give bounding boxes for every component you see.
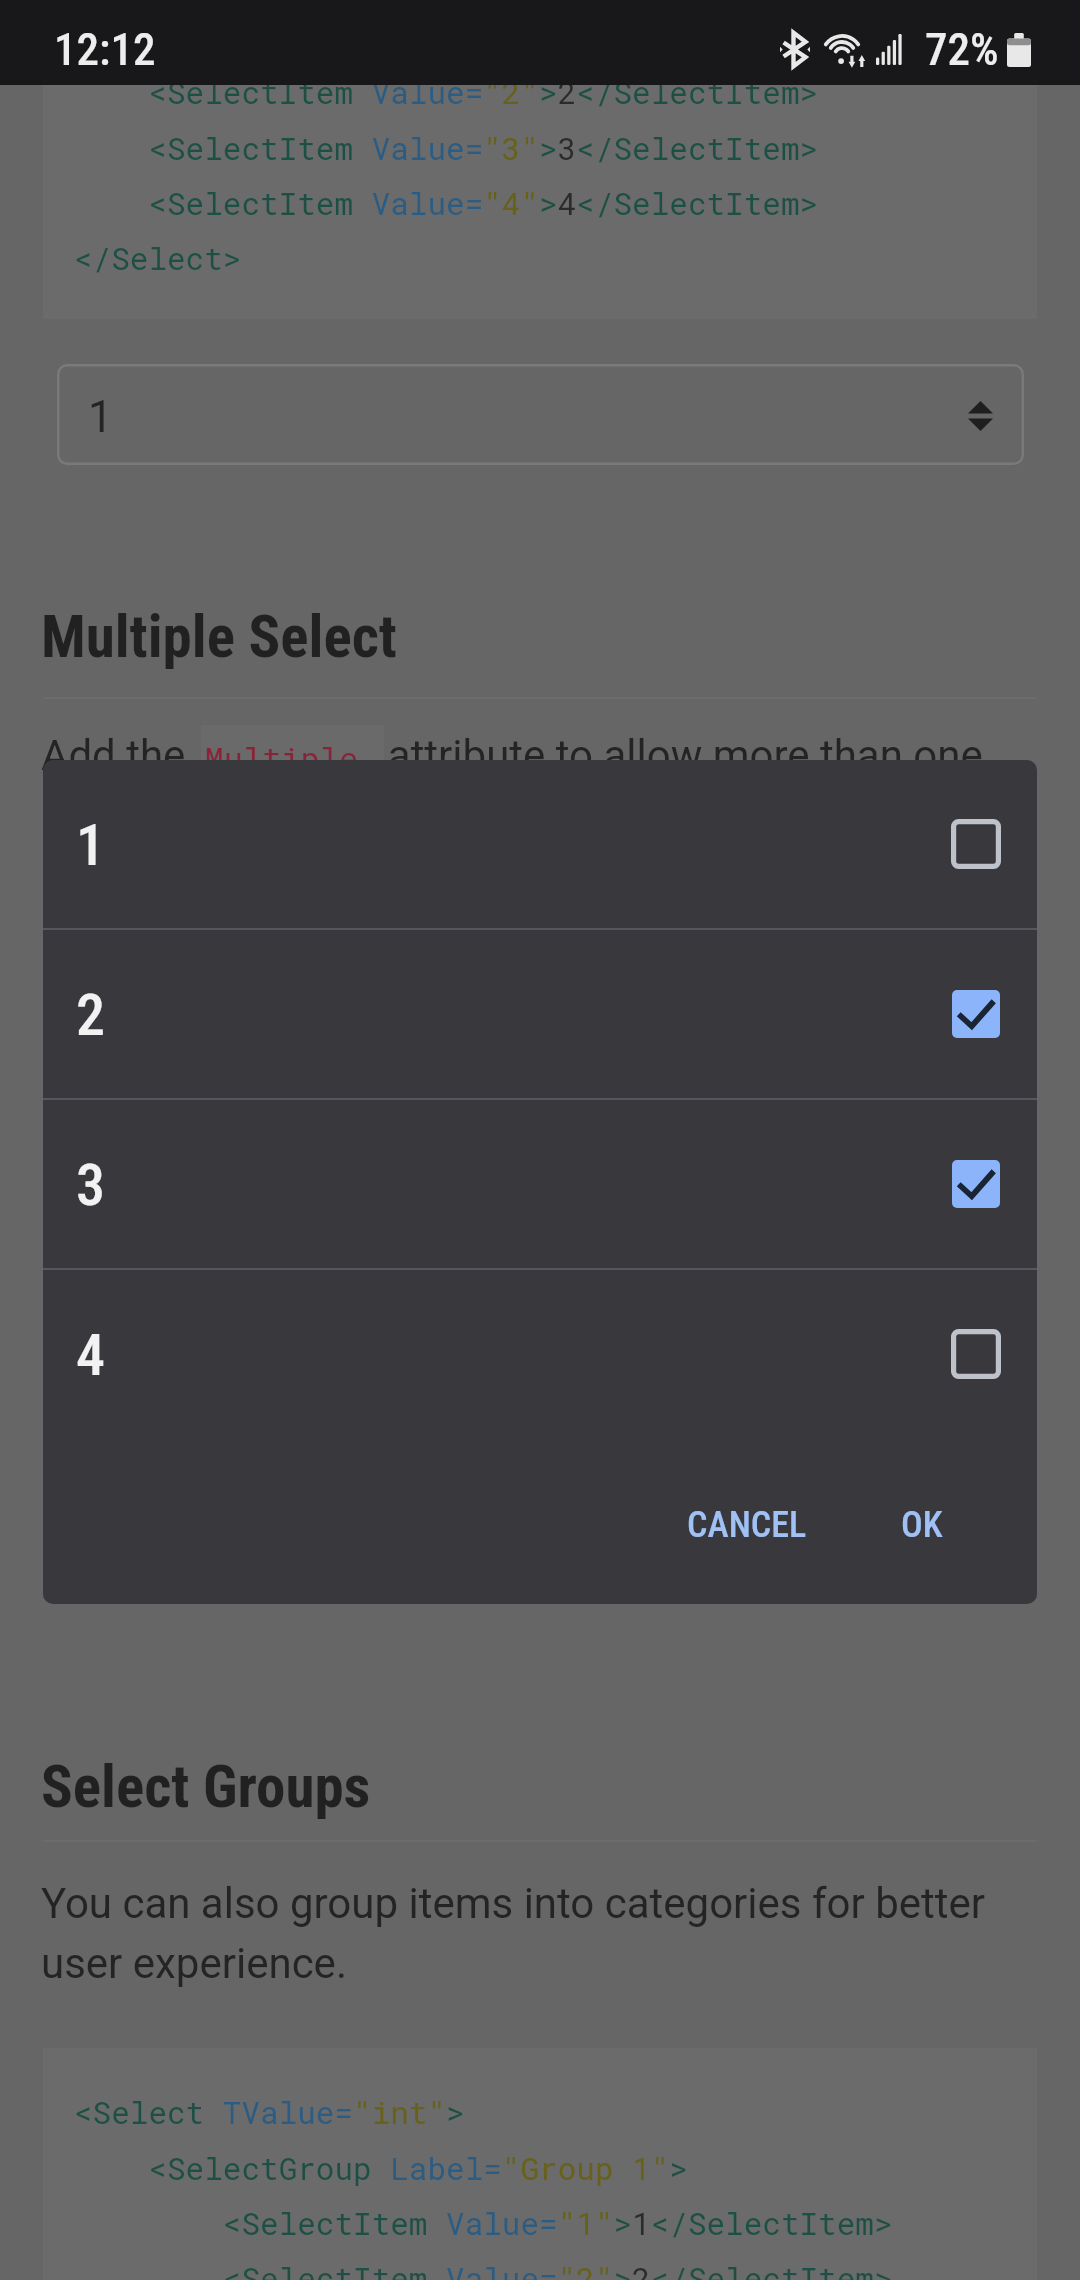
staticText: 1 [88,391,113,443]
staticText: 3 [76,1151,105,1219]
staticText: 1 [76,811,105,879]
staticText: <Select TValue="int"> <SelectGroup Label… [74,2092,893,2280]
other: Cellular signal [876,34,904,65]
staticText: Select Groups [41,1752,371,1821]
staticText: Multiple Select [41,602,397,671]
staticText: CANCEL [687,1504,807,1546]
button[interactable]: 1 [57,364,1024,465]
button[interactable]: 2 [43,930,1037,1098]
button[interactable]: 1 [43,760,1037,928]
staticText: 2 [76,981,105,1049]
staticText: <SelectItem Value="2">2</SelectItem> <Se… [74,72,819,278]
other: Bluetooth [780,32,810,67]
staticText: 4 [76,1321,105,1389]
button[interactable]: OK [881,1486,963,1564]
other: Selected [951,1159,1001,1209]
other: Selected [951,989,1001,1039]
other: Not selected [951,819,1001,869]
button[interactable]: 4 [43,1270,1037,1438]
other: Battery [1007,33,1031,67]
staticText: Add the Multiple attribute to allow more… [41,731,1061,780]
staticText: 72% [925,23,999,76]
button[interactable]: CANCEL [667,1486,827,1564]
staticText: 12:12 [54,23,156,76]
staticText: OK [901,1504,943,1546]
staticText: You can also group items into categories… [41,1879,1001,1988]
other: Not selected [951,1329,1001,1379]
other: Wi-Fi [824,32,869,65]
button[interactable]: 3 [43,1100,1037,1268]
